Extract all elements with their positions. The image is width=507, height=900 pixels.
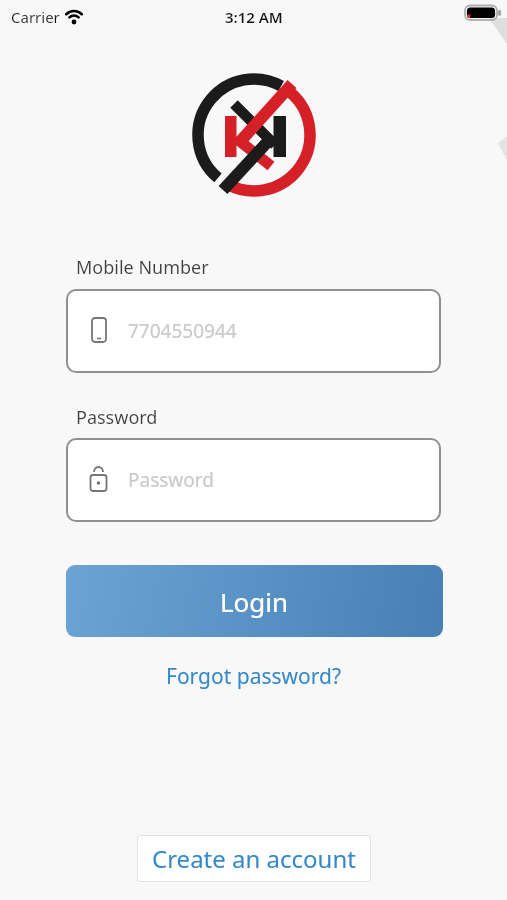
staticText: Password xyxy=(76,405,158,430)
staticText: Create an account xyxy=(152,842,356,875)
staticText: 3:12 AM xyxy=(225,7,283,27)
staticText: Forgot password? xyxy=(166,662,342,691)
button[interactable]: Password xyxy=(66,438,441,522)
staticText: Password xyxy=(128,467,214,493)
staticText: 7704550944 xyxy=(128,318,237,344)
staticText: Login xyxy=(220,584,289,619)
button[interactable]: Create an account xyxy=(137,835,371,882)
staticText: Mobile Number xyxy=(76,255,209,280)
staticText: Carrier xyxy=(11,7,60,27)
button[interactable]: Forgot password? xyxy=(166,662,342,691)
button[interactable]: Login xyxy=(66,565,443,637)
button[interactable]: 7704550944 xyxy=(66,289,441,373)
